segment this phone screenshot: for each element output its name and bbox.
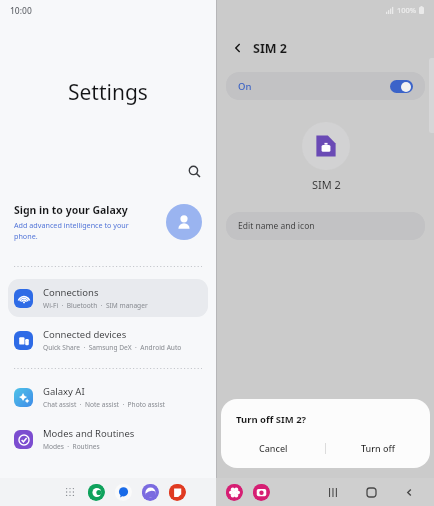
button[interactable]: Modes and Routines	[8, 420, 208, 458]
staticText: Quick Share · Samsung DeX · Android Auto	[43, 343, 182, 352]
button[interactable]: Connected devices	[8, 321, 208, 359]
button[interactable]: Camera	[252, 483, 270, 501]
button[interactable]: Recent apps	[324, 483, 342, 501]
button[interactable]: On	[226, 72, 425, 100]
staticText: Turn off	[361, 442, 395, 454]
staticText: 100%	[397, 5, 417, 15]
button[interactable]: Internet	[141, 483, 159, 501]
staticText: Turn off SIM 2?	[236, 413, 307, 426]
staticText: SIM 2	[253, 40, 287, 57]
staticText: Wi-Fi · Bluetooth · SIM manager	[43, 301, 148, 310]
button[interactable]: Connections	[8, 279, 208, 317]
staticText: Connections	[43, 286, 99, 299]
staticText: Sign in to your Galaxy	[14, 203, 128, 217]
button[interactable]: Samsung Notes	[168, 483, 186, 501]
staticText: Settings	[68, 78, 148, 107]
button[interactable]: Navigate up	[229, 39, 247, 57]
button[interactable]: Search settings	[182, 159, 206, 183]
button[interactable]: Cancel	[221, 437, 325, 459]
staticText: Modes and Routines	[43, 427, 135, 440]
staticText: On	[238, 80, 252, 93]
staticText: SIM 2	[312, 177, 341, 192]
staticText: Modes · Routines	[43, 442, 100, 451]
button[interactable]: Sign in to your Galaxy	[0, 191, 216, 253]
button[interactable]: Galaxy AI	[8, 378, 208, 416]
button[interactable]: Home	[362, 483, 380, 501]
staticText: Cancel	[259, 442, 288, 454]
button[interactable]: Back	[400, 483, 418, 501]
staticText: phone.	[14, 231, 38, 241]
button[interactable]: Apps	[62, 484, 78, 500]
staticText: Chat assist · Note assist · Photo assist	[43, 400, 166, 409]
button[interactable]: Gallery	[225, 483, 243, 501]
button[interactable]: Messages	[114, 483, 132, 501]
staticText: Connected devices	[43, 328, 127, 341]
staticText: Galaxy AI	[43, 385, 85, 398]
button[interactable]: Edit name and icon	[226, 212, 425, 240]
button[interactable]: Phone	[87, 483, 105, 501]
button[interactable]: Turn off	[326, 437, 430, 459]
staticText: 10:00	[10, 5, 32, 17]
staticText: Edit name and icon	[238, 220, 315, 232]
staticText: Add advanced intelligence to your	[14, 220, 129, 230]
